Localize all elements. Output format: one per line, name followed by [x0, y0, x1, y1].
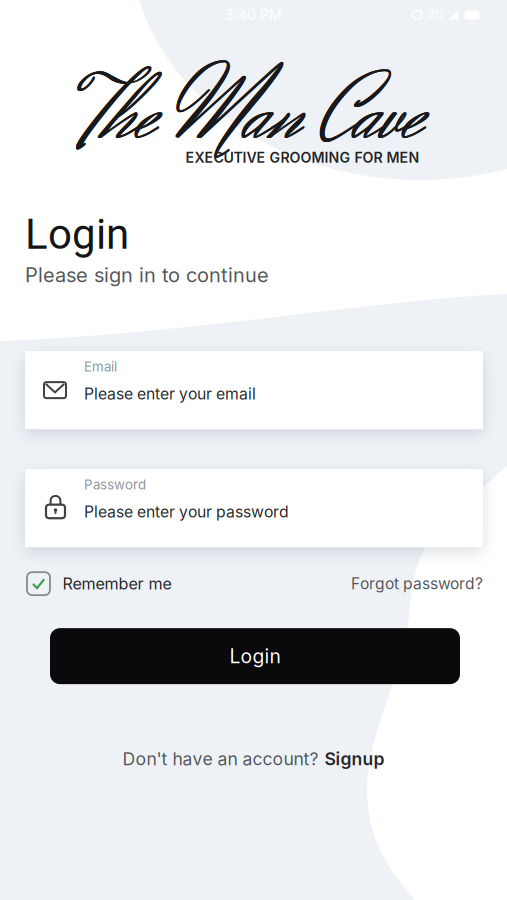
staticText: Please sign in to continue — [25, 263, 269, 287]
staticText: 4G — [428, 8, 443, 22]
staticText: Remember me — [62, 574, 171, 593]
button[interactable]: Forgot password? — [351, 574, 483, 593]
staticText: Password — [84, 477, 146, 493]
staticText: Please enter your password — [84, 502, 289, 521]
staticText: The Man Cave — [76, 51, 422, 184]
staticText: Don't have an account? — [122, 748, 318, 769]
staticText: Login — [229, 644, 280, 668]
staticText: The Man Cave — [77, 51, 423, 184]
staticText: 3:40 PM — [225, 6, 282, 23]
staticText: Email — [84, 359, 117, 375]
staticText: Login — [25, 210, 129, 259]
staticText: EXECUTIVE GROOMING FOR MEN — [185, 149, 419, 166]
staticText: The Man Cave — [75, 51, 421, 184]
button[interactable]: Remember me — [26, 571, 171, 596]
button[interactable]: Login — [50, 628, 460, 684]
staticText: Signup — [324, 748, 384, 769]
staticText: The Man Cave — [75, 51, 421, 184]
staticText: The Man Cave — [77, 51, 423, 184]
button[interactable]: Email — [25, 351, 483, 429]
button[interactable]: Password — [25, 469, 483, 547]
staticText: Please enter your email — [84, 384, 256, 403]
button[interactable]: Don't have an account? — [122, 748, 384, 769]
staticText: The Man Cave — [76, 51, 422, 184]
staticText: Forgot password? — [351, 574, 483, 593]
